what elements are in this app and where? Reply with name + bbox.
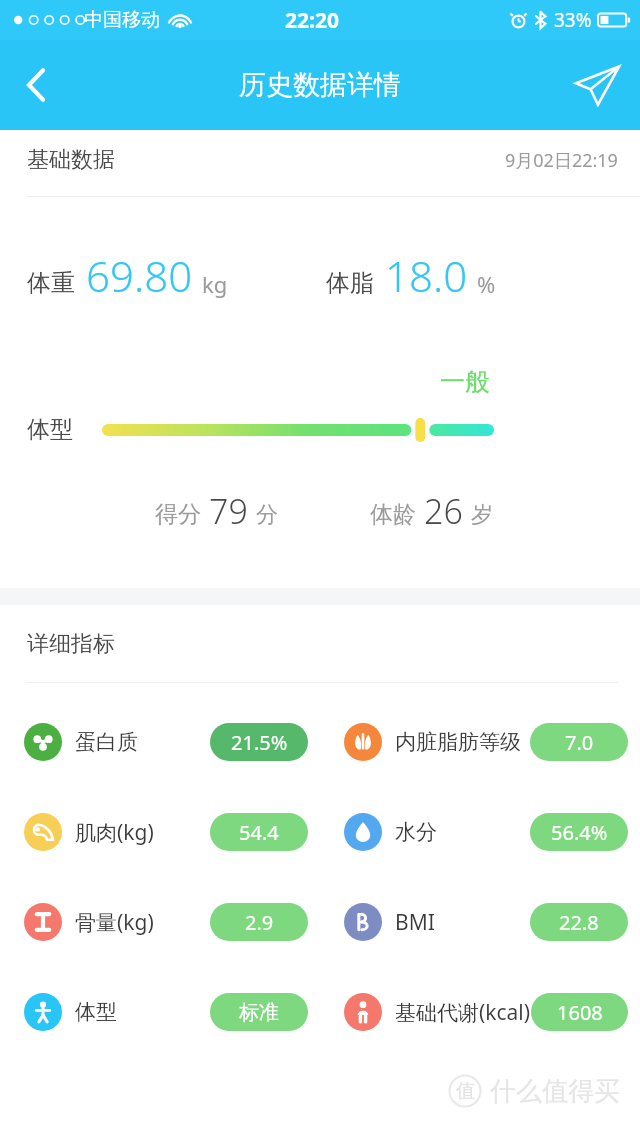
staticText: 体脂 [326,268,374,298]
button[interactable]: 水分 [320,787,640,877]
button[interactable]: 基础代谢(kcal) [320,967,640,1057]
staticText: 69.80 [86,247,193,304]
staticText: 体重 [27,268,75,298]
staticText: 33% [554,7,592,33]
staticText: 7.0 [565,729,594,756]
staticText: 18.0 [385,247,468,304]
staticText: 56.4% [551,819,608,846]
button[interactable]: 骨量(kg) [0,877,320,967]
staticText: 体龄 [370,500,416,529]
staticText: BMI [395,908,435,937]
button[interactable]: 体型 [0,967,320,1057]
staticText: 分 [256,501,278,529]
staticText: 79 [209,488,248,534]
staticText: 26 [424,488,463,534]
staticText: kg [202,269,228,299]
button[interactable]: BMI [320,877,640,967]
button[interactable]: 内脏脂肪等级 [320,697,640,787]
staticText: 岁 [471,501,493,529]
staticText: 2.9 [245,909,274,936]
staticText: 蛋白质 [75,729,138,755]
staticText: 22.8 [559,909,599,936]
staticText: 值 [456,1079,475,1103]
staticText: 内脏脂肪等级 [395,729,521,755]
staticText: 基础代谢(kcal) [395,998,531,1027]
button[interactable]: 蛋白质 [0,697,320,787]
staticText: 什么值得买 [490,1075,620,1108]
button[interactable]: Share [554,45,640,125]
staticText: 22:20 [285,6,339,35]
staticText: 标准 [239,1000,279,1025]
staticText: 中国移动 [84,8,160,32]
staticText: 1608 [557,999,603,1026]
button[interactable]: 肌肉(kg) [0,787,320,877]
staticText: 得分 [155,500,201,529]
button[interactable]: Back [0,45,72,125]
staticText: 9月02日22:19 [505,148,618,173]
staticText: 基础数据 [27,146,115,174]
staticText: 历史数据详情 [239,68,401,102]
staticText: 体型 [75,999,117,1025]
staticText: 体型 [27,415,73,444]
staticText: 一般 [440,366,490,397]
staticText: 骨量(kg) [75,908,154,937]
staticText: 54.4 [239,819,279,846]
staticText: 水分 [395,819,437,845]
staticText: 21.5% [231,729,288,756]
staticText: 肌肉(kg) [75,818,154,847]
staticText: 详细指标 [27,630,115,658]
staticText: % [477,269,496,299]
